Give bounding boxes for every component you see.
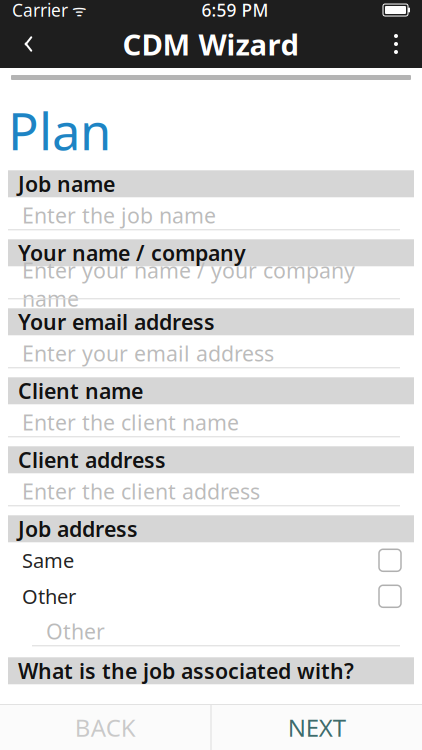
staticText: What is the job associated with? — [18, 657, 354, 685]
staticText: BACK — [75, 712, 136, 743]
staticText: Other — [22, 583, 76, 610]
staticText: Enter the client name — [22, 408, 239, 436]
staticText: Client name — [18, 377, 143, 405]
staticText: 6:59 PM — [201, 0, 268, 21]
staticText: Same — [22, 547, 74, 574]
button[interactable]: Enter the job name — [0, 201, 422, 230]
button[interactable]: NEXT — [211, 705, 422, 750]
button[interactable]: Other — [0, 617, 422, 646]
staticText: Client address — [18, 446, 166, 474]
button[interactable]: Same — [0, 542, 422, 578]
staticText: ᯤ — [68, 0, 87, 21]
staticText: Other — [46, 617, 105, 645]
staticText: NEXT — [288, 712, 346, 743]
staticText: Job name — [18, 170, 115, 198]
button[interactable]: Other — [0, 578, 422, 614]
button[interactable]: Enter your email address — [0, 339, 422, 368]
staticText: Job address — [18, 515, 138, 543]
button[interactable]: More options — [370, 20, 422, 68]
staticText: Enter your name / your company name — [22, 256, 355, 313]
button[interactable]: BACK — [0, 705, 210, 750]
staticText: Plan — [8, 97, 111, 164]
staticText: Your email address — [18, 308, 215, 336]
button[interactable]: Back — [0, 20, 52, 68]
staticText: CDM Wizard — [122, 24, 299, 63]
staticText: Your name / company — [18, 239, 246, 267]
staticText: Enter your email address — [22, 339, 274, 367]
button[interactable]: Enter the client address — [0, 477, 422, 506]
staticText: Enter the client address — [22, 477, 260, 505]
staticText: Carrier — [12, 0, 68, 21]
button[interactable]: Enter the client name — [0, 408, 422, 437]
staticText: Enter the job name — [22, 201, 216, 229]
button[interactable]: Enter your name / your company name — [0, 270, 422, 299]
